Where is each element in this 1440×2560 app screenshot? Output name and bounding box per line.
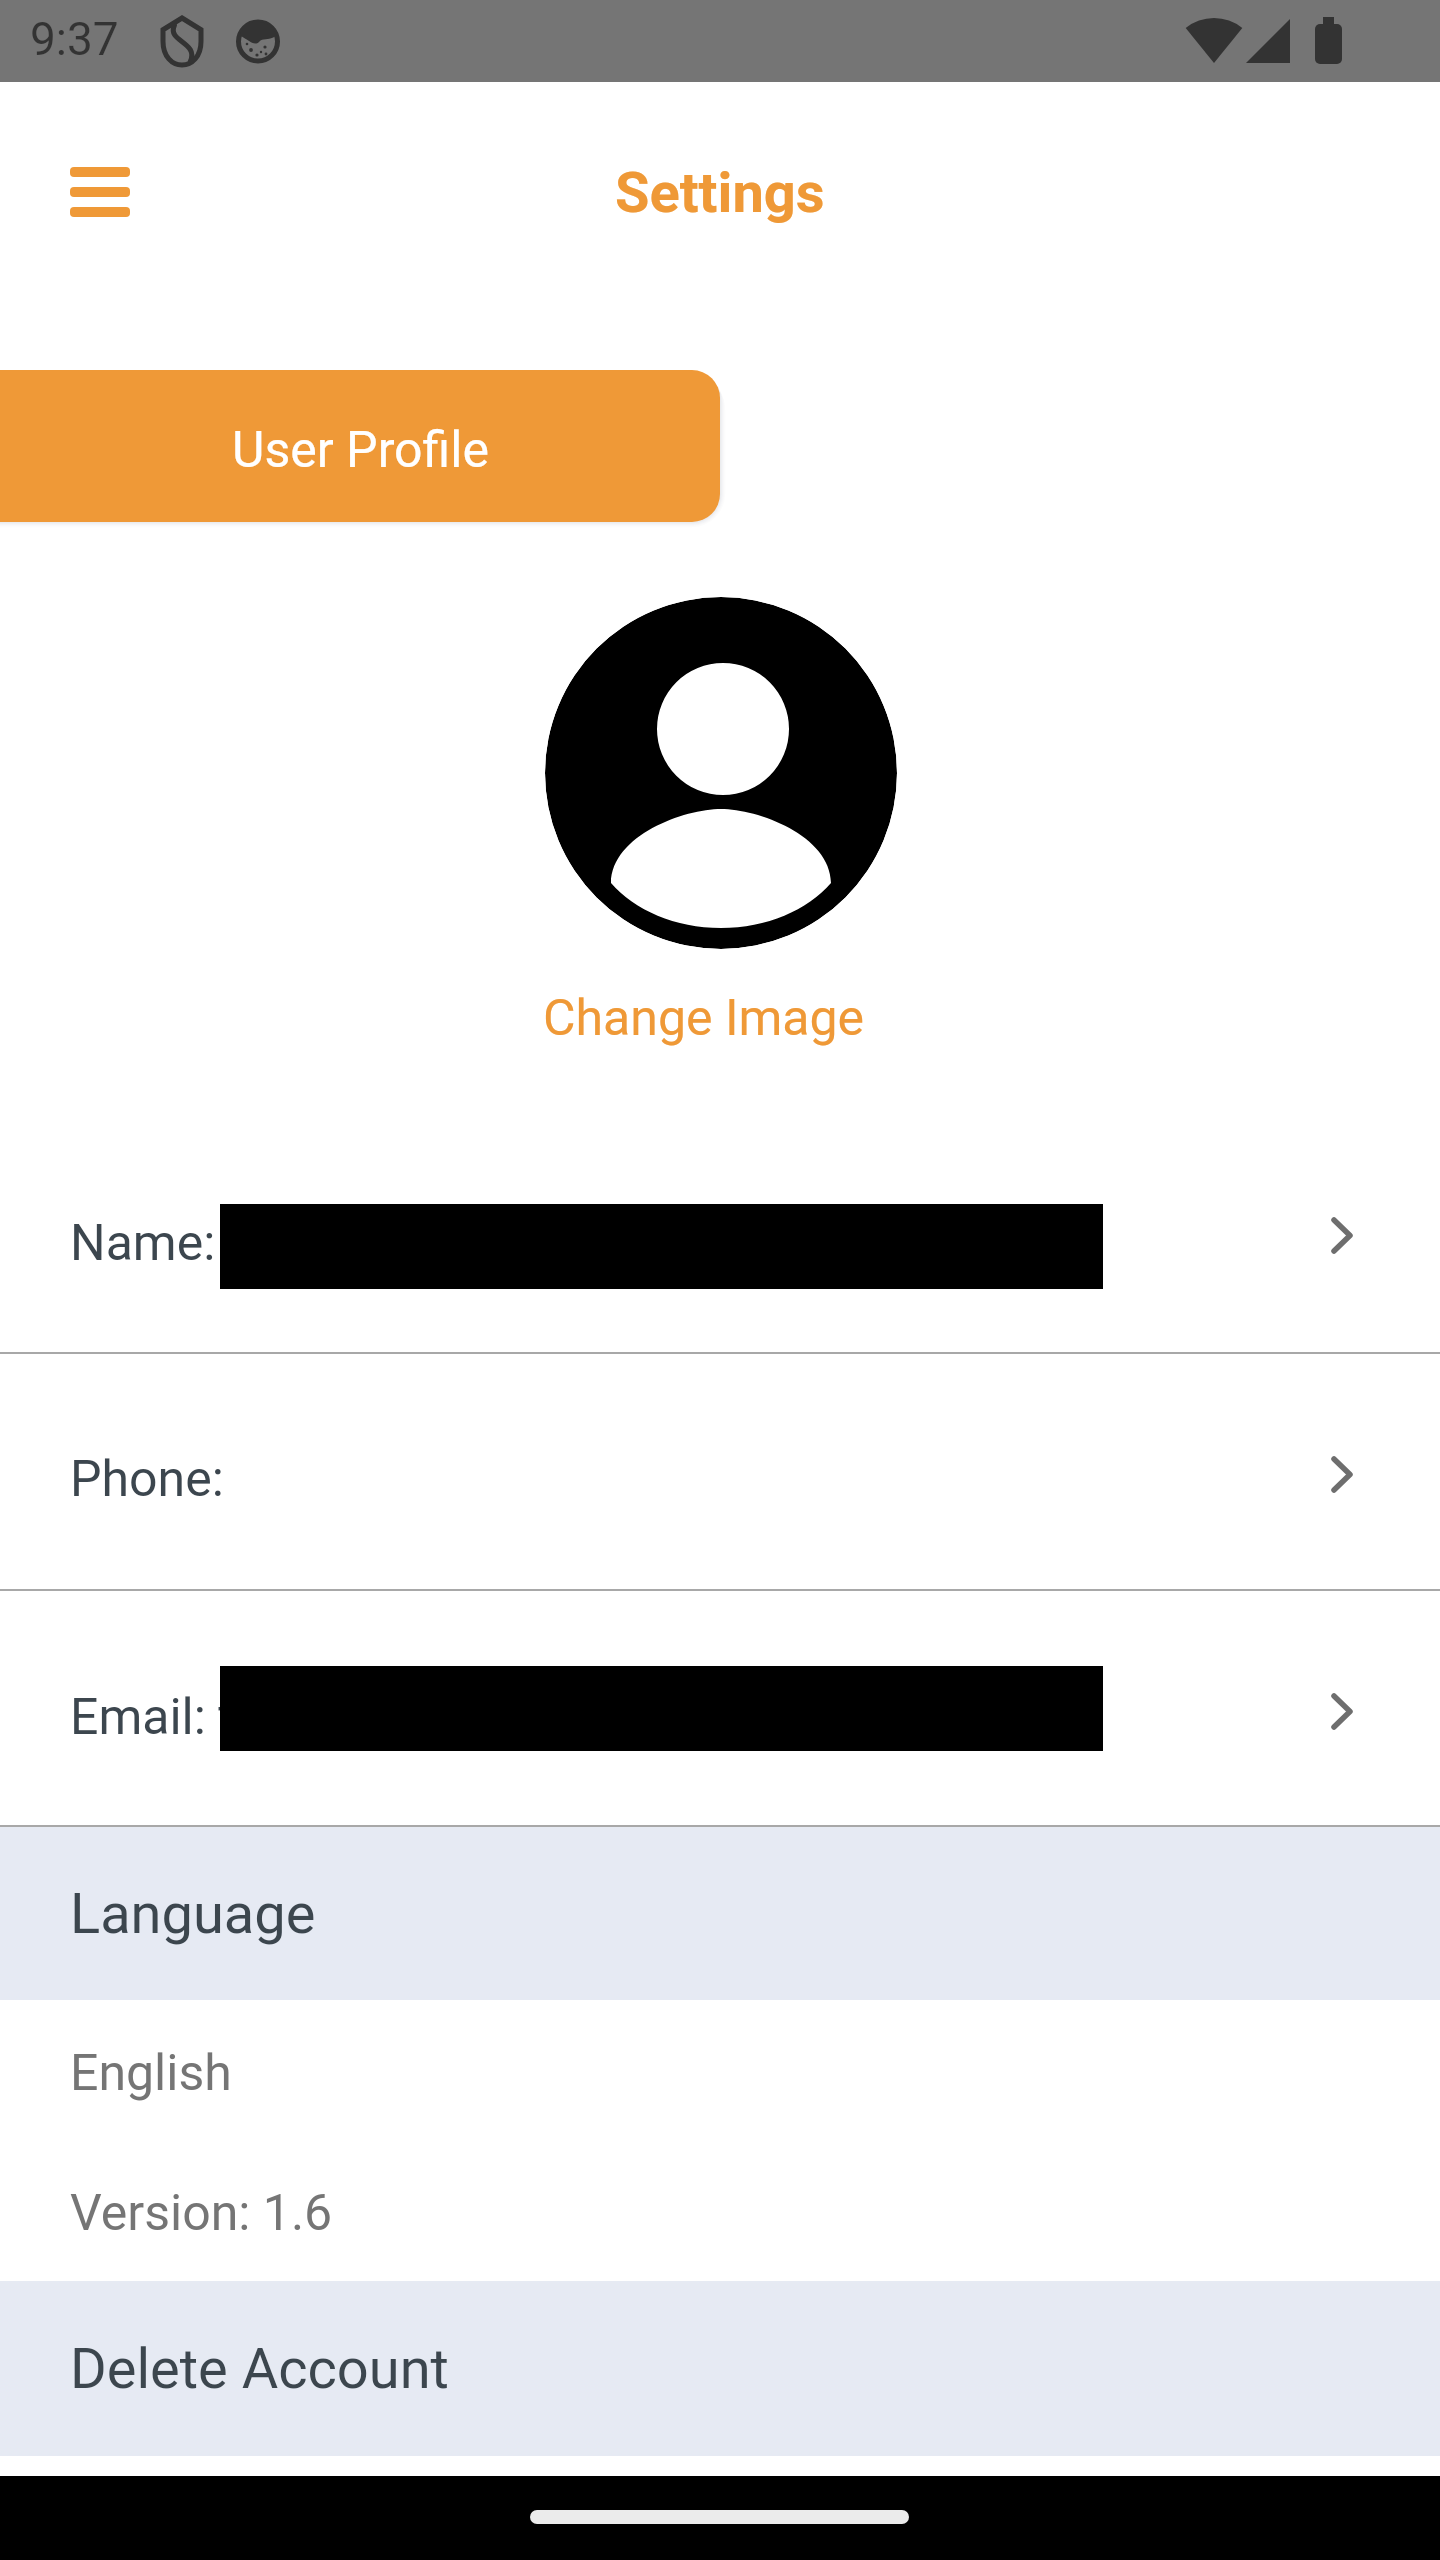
staticText: 9:37 bbox=[30, 12, 119, 66]
button[interactable]: Language bbox=[0, 1827, 1440, 2000]
button[interactable]: Delete Account bbox=[0, 2281, 1440, 2456]
button[interactable]: Phone: bbox=[0, 1354, 1440, 1591]
button[interactable]: Email: t bbox=[0, 1591, 1440, 1828]
staticText: Phone: bbox=[70, 1450, 224, 1509]
button[interactable]: User Profile bbox=[0, 370, 720, 522]
staticText: Name: bbox=[70, 1214, 216, 1273]
button[interactable]: Name: bbox=[0, 1115, 1440, 1352]
staticText: Version: 1.6 bbox=[70, 2184, 333, 2243]
button[interactable]: Menu bbox=[40, 137, 160, 247]
staticText: Email: t bbox=[70, 1688, 235, 1747]
button[interactable]: Profile photo bbox=[545, 597, 897, 949]
button[interactable]: Change Image bbox=[504, 982, 904, 1054]
staticText: User Profile bbox=[232, 421, 489, 480]
staticText: Settings bbox=[615, 160, 825, 226]
staticText: English bbox=[70, 2044, 232, 2103]
staticText: Delete Account bbox=[70, 2336, 449, 2402]
staticText: Change Image bbox=[543, 989, 865, 1048]
staticText: Language bbox=[70, 1881, 316, 1947]
